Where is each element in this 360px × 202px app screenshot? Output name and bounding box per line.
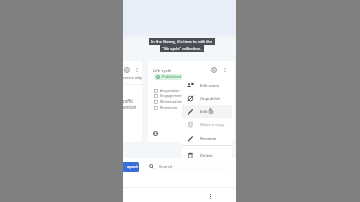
staticText: Published (162, 74, 181, 80)
staticText: ention (123, 104, 137, 110)
staticText: "life cycle" collection. (162, 46, 202, 51)
staticText: Rename (200, 136, 217, 142)
staticText: Monetization (160, 99, 184, 104)
button[interactable]: Edit (182, 105, 232, 118)
staticText: Make a copy (200, 122, 225, 128)
staticText: Edit users (200, 83, 220, 89)
staticText: Unpublish (200, 96, 221, 102)
staticText: In the library, it's time to edit the (151, 39, 213, 44)
staticText: Acquisition (160, 88, 180, 93)
staticText: Retention (160, 105, 178, 110)
button[interactable]: Search (146, 162, 225, 171)
staticText: Search (159, 164, 173, 170)
staticText: Delete (200, 153, 213, 159)
staticText: rence obje... (123, 75, 142, 81)
button[interactable]: Make a copy (182, 118, 232, 131)
staticText: Edit (200, 109, 208, 115)
staticText: xport (127, 164, 138, 170)
button[interactable]: More options (206, 192, 214, 200)
button[interactable]: Delete (182, 149, 232, 162)
button[interactable]: Rename (182, 132, 232, 145)
button[interactable]: xport (123, 162, 139, 172)
staticText: raffic (123, 98, 134, 104)
staticText: Engagement (160, 93, 183, 98)
staticText: Life cycle (153, 67, 172, 73)
button[interactable]: Edit users (182, 79, 232, 92)
button[interactable]: Unpublish (182, 92, 232, 105)
